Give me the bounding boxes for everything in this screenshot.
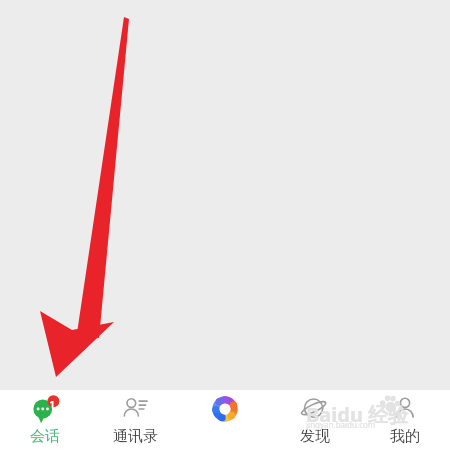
staticText: 我的 bbox=[390, 427, 420, 445]
staticText: 通讯录 bbox=[113, 427, 158, 445]
staticText: 1 bbox=[47, 397, 57, 409]
button[interactable]: 工作台 bbox=[180, 390, 270, 450]
staticText: 会话 bbox=[30, 427, 60, 445]
staticText: jingyan.baidu.com bbox=[306, 419, 376, 430]
button[interactable]: 1 bbox=[0, 390, 90, 450]
button[interactable]: 发现 bbox=[270, 390, 360, 450]
staticText: Baidu 经验 bbox=[306, 401, 409, 428]
button[interactable]: 通讯录 bbox=[90, 390, 180, 450]
staticText: 发现 bbox=[300, 427, 330, 445]
button[interactable]: 我的 bbox=[360, 390, 450, 450]
